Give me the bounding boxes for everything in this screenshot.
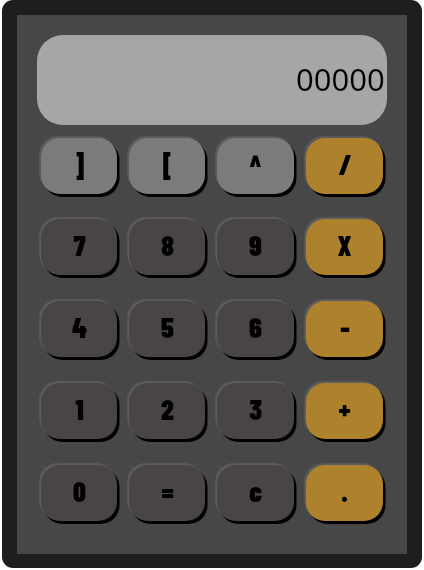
staticText: = — [161, 474, 174, 508]
staticText: 1 — [75, 392, 84, 426]
staticText: c — [249, 474, 262, 508]
button[interactable]: 1 — [41, 383, 117, 439]
button[interactable]: 7 — [41, 219, 117, 275]
staticText: X — [337, 228, 352, 262]
button[interactable]: 2 — [129, 383, 205, 439]
staticText: ^ — [249, 147, 262, 181]
button[interactable]: 6 — [217, 301, 294, 357]
button[interactable]: 0 — [41, 465, 117, 521]
staticText: 00000 — [296, 58, 385, 100]
staticText: 3 — [249, 392, 262, 426]
button[interactable]: 8 — [129, 219, 205, 275]
staticText: 6 — [249, 310, 262, 344]
button[interactable]: = — [129, 465, 205, 521]
staticText: 4 — [72, 310, 87, 344]
staticText: + — [338, 392, 351, 426]
button[interactable]: [ — [129, 138, 205, 194]
staticText: 2 — [161, 392, 174, 426]
staticText: ] — [74, 147, 85, 181]
staticText: 9 — [249, 228, 262, 262]
button[interactable]: + — [306, 383, 383, 439]
button[interactable]: X — [306, 219, 383, 275]
button[interactable]: . — [306, 465, 383, 521]
staticText: - — [340, 310, 350, 344]
staticText: . — [341, 474, 348, 508]
staticText: 5 — [161, 310, 174, 344]
button[interactable]: 4 — [41, 301, 117, 357]
staticText: 7 — [73, 228, 86, 262]
staticText: 0 — [73, 474, 86, 508]
button[interactable]: 9 — [217, 219, 294, 275]
staticText: / — [338, 147, 352, 181]
staticText: 8 — [161, 228, 174, 262]
button[interactable]: ^ — [217, 138, 294, 194]
staticText: [ — [162, 147, 173, 181]
button[interactable]: - — [306, 301, 383, 357]
button[interactable]: 5 — [129, 301, 205, 357]
button[interactable]: / — [306, 138, 383, 194]
button[interactable]: ] — [41, 138, 117, 194]
button[interactable]: c — [217, 465, 294, 521]
button[interactable]: 3 — [217, 383, 294, 439]
